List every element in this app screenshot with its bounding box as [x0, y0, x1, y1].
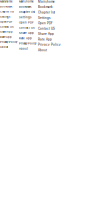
staticText: Share App	[19, 31, 34, 35]
staticText: Main/home	[38, 0, 55, 3]
staticText: About	[0, 46, 8, 49]
staticText: Main/home	[19, 0, 34, 3]
staticText: Privacy Policy	[38, 43, 61, 46]
staticText: Open PDF	[19, 21, 34, 24]
staticText: Privacy Policy	[0, 40, 17, 44]
staticText: Share App	[38, 32, 54, 36]
staticText: Settings	[38, 16, 50, 20]
staticText: Settings	[0, 15, 10, 18]
staticText: Chapter list	[0, 10, 14, 13]
staticText: Main/home	[0, 0, 12, 3]
staticText: Rate App	[0, 35, 12, 39]
staticText: Open PDF	[38, 22, 53, 25]
staticText: Rate App	[19, 37, 32, 40]
staticText: About	[19, 47, 28, 50]
staticText: Contact US	[38, 27, 55, 30]
staticText: Contact US	[0, 25, 14, 28]
staticText: Open PDF	[0, 20, 12, 23]
staticText: Rate App	[38, 38, 52, 41]
staticText: Settings	[19, 16, 31, 19]
staticText: Bookmark	[19, 5, 31, 8]
staticText: Chapter list	[19, 10, 35, 14]
staticText: Chapter list	[38, 11, 55, 14]
staticText: Contact US	[19, 26, 35, 29]
staticText: Bookmark	[0, 5, 12, 8]
staticText: Bookmark	[38, 5, 53, 9]
staticText: Privacy Policy	[19, 42, 36, 45]
staticText: About	[38, 48, 47, 52]
staticText: Share App	[0, 30, 13, 33]
